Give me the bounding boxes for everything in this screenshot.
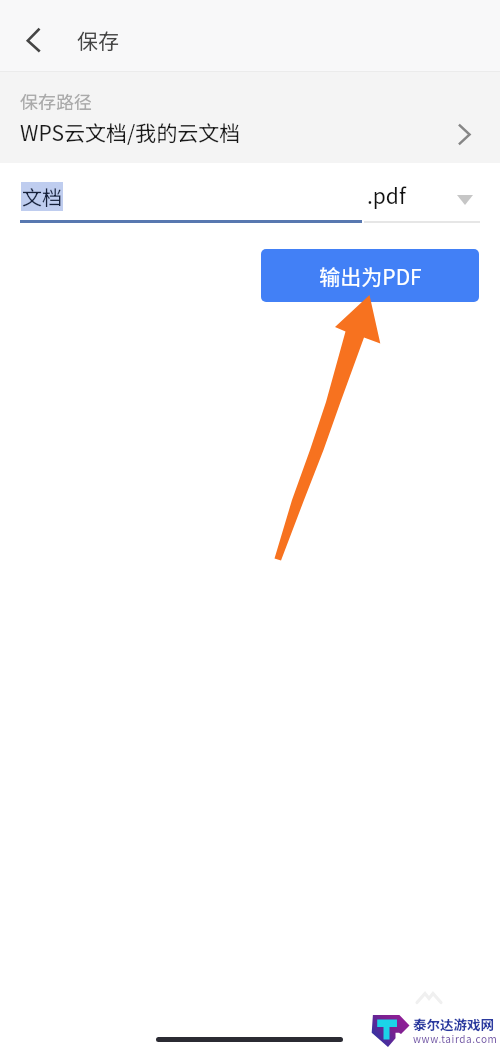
button[interactable]: 保存路径: [0, 72, 500, 163]
staticText: 泰尔达游戏网: [413, 1014, 494, 1034]
button[interactable]: Back: [8, 8, 60, 64]
staticText: 输出为PDF: [319, 261, 422, 291]
staticText: 文档: [22, 182, 62, 211]
button[interactable]: 输出为PDF: [261, 249, 479, 302]
staticText: WPS云文档/我的云文档: [20, 117, 241, 147]
staticText: 保存路径: [20, 88, 92, 114]
button[interactable]: 文档: [21, 182, 63, 211]
staticText: .pdf: [367, 180, 406, 210]
button[interactable]: .pdf: [364, 175, 480, 220]
staticText: 保存: [77, 25, 119, 55]
staticText: www.tairda.com: [413, 1031, 498, 1045]
